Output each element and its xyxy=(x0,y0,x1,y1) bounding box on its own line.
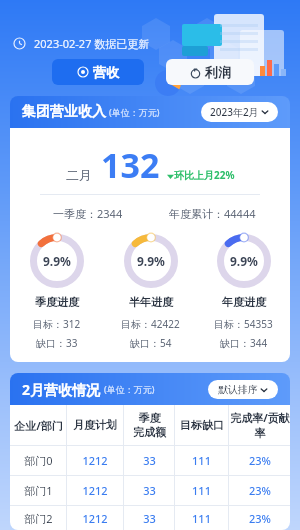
staticText: 1212 xyxy=(82,453,108,468)
staticText: 111 xyxy=(192,483,211,498)
staticText: 1212 xyxy=(82,483,108,498)
staticText: 2月营收情况 xyxy=(22,380,101,399)
staticText: 默认排序 xyxy=(218,383,258,396)
staticText: 9.9% xyxy=(43,253,71,269)
staticText: 环比上月22% xyxy=(174,168,235,182)
staticText: (单位：万元) xyxy=(104,383,155,395)
button[interactable]: 部门2 xyxy=(10,506,290,530)
staticText: 111 xyxy=(192,511,211,526)
staticText: 集团营业收入 xyxy=(22,103,106,121)
staticText: 部门0 xyxy=(24,453,53,468)
staticText: 月度计划 xyxy=(73,418,117,432)
button[interactable]: 部门1 xyxy=(10,476,290,505)
staticText: 年度进度 xyxy=(222,295,266,309)
staticText: 33 xyxy=(143,483,156,498)
staticText: 部门1 xyxy=(24,483,53,498)
staticText: 目标：42422 xyxy=(121,317,180,331)
staticText: 9.9% xyxy=(230,253,258,269)
staticText: 1212 xyxy=(82,511,108,526)
staticText: 33 xyxy=(143,453,156,468)
staticText: 23% xyxy=(249,483,271,498)
staticText: 二月 xyxy=(66,167,92,183)
staticText: 目标：54353 xyxy=(214,317,273,331)
staticText: 目标：312 xyxy=(33,317,81,331)
staticText: 半年进度 xyxy=(129,295,173,309)
staticText: 利润 xyxy=(205,64,231,80)
staticText: 33 xyxy=(143,511,156,526)
staticText: 完成率/贡献 率 xyxy=(230,410,290,440)
staticText: 缺口：344 xyxy=(220,336,268,350)
button[interactable]: 部门0 xyxy=(10,446,290,475)
staticText: 2023年2月 xyxy=(210,105,259,119)
button[interactable]: 利润 xyxy=(166,59,254,85)
staticText: (单位：万元) xyxy=(109,106,160,118)
staticText: 23% xyxy=(249,511,271,526)
staticText: 9.9% xyxy=(137,253,165,269)
button[interactable]: 营收 xyxy=(52,59,144,85)
staticText: 季度 完成额 xyxy=(133,411,166,439)
staticText: 一季度：2344 xyxy=(53,206,123,221)
staticText: 132 xyxy=(101,142,160,188)
staticText: 季度进度 xyxy=(35,295,79,309)
staticText: 2023-02-27 数据已更新 xyxy=(34,36,150,51)
staticText: 部门2 xyxy=(24,511,53,526)
staticText: 23% xyxy=(249,453,271,468)
staticText: 缺口：54 xyxy=(130,336,172,350)
staticText: 年度累计：44444 xyxy=(169,206,256,221)
button[interactable]: 默认排序 xyxy=(208,380,278,399)
staticText: 目标缺口 xyxy=(180,418,224,432)
staticText: 企业/部门 xyxy=(14,418,63,433)
button[interactable]: 2023年2月 xyxy=(201,102,278,122)
staticText: 营收 xyxy=(93,64,119,80)
staticText: 缺口：33 xyxy=(36,336,78,350)
staticText: 111 xyxy=(192,453,211,468)
